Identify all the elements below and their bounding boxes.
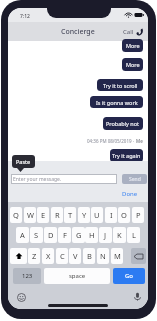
staticText: Go (125, 272, 133, 280)
staticText: Enter your message. (13, 176, 62, 183)
staticText: Is it gonna work (96, 99, 138, 106)
staticText: V (73, 251, 78, 261)
button[interactable]: Go (113, 268, 145, 284)
staticText: space (69, 272, 86, 280)
button[interactable]: C (56, 248, 68, 264)
button[interactable]: A (16, 227, 29, 243)
staticText: A (20, 230, 25, 240)
staticText: R (55, 210, 60, 220)
button[interactable]: 123 (13, 268, 41, 284)
staticText: B (87, 251, 92, 261)
staticText: More (126, 61, 140, 68)
staticText: 7:12 (20, 13, 30, 20)
button[interactable]: Try it to scroll (97, 79, 143, 91)
staticText: Me (136, 138, 143, 144)
button[interactable]: R (51, 207, 63, 223)
button[interactable]: I (105, 207, 117, 223)
staticText: Q (13, 210, 19, 220)
button[interactable]: X (42, 248, 54, 264)
button[interactable]: G (72, 227, 85, 243)
button[interactable]: Backspace (131, 248, 146, 264)
button[interactable]: S (30, 227, 43, 243)
button[interactable]: space (44, 268, 110, 284)
staticText: M (114, 251, 121, 261)
staticText: D (48, 230, 54, 240)
button[interactable]: Dictation (133, 292, 142, 301)
button[interactable]: K (113, 227, 126, 243)
staticText: Done (122, 190, 138, 198)
staticText: E (41, 210, 46, 220)
button[interactable]: Emoji (17, 293, 26, 302)
button[interactable]: U (91, 207, 103, 223)
button[interactable]: Z (28, 248, 40, 264)
button[interactable]: Try it again (110, 149, 143, 162)
button[interactable]: Paste (12, 155, 35, 168)
staticText: H (89, 230, 95, 240)
staticText: N (100, 251, 106, 261)
button[interactable]: More (122, 39, 143, 52)
staticText: G (76, 230, 82, 240)
other: Backspace (134, 253, 143, 260)
button[interactable]: P (132, 207, 144, 223)
staticText: Call (123, 28, 134, 36)
staticText: U (94, 210, 100, 220)
button[interactable]: More (122, 58, 143, 71)
button[interactable]: H (85, 227, 98, 243)
button[interactable]: E (37, 207, 49, 223)
button[interactable]: O (118, 207, 130, 223)
button[interactable]: Shift (10, 248, 27, 264)
button[interactable]: Y (78, 207, 90, 223)
button[interactable]: T (64, 207, 76, 223)
button[interactable]: D (44, 227, 57, 243)
button[interactable]: W (24, 207, 36, 223)
other: Shift (15, 252, 23, 260)
staticText: T (68, 210, 73, 220)
staticText: Probably not (106, 120, 140, 127)
button[interactable]: M (111, 248, 123, 264)
button[interactable]: Done (120, 189, 140, 199)
staticText: Try it to scroll (103, 82, 138, 89)
staticText: More (126, 42, 140, 49)
staticText: W (27, 210, 34, 220)
staticText: I (110, 210, 113, 220)
button[interactable]: L (127, 227, 140, 243)
staticText: L (132, 230, 136, 240)
button[interactable]: Call (123, 28, 144, 36)
staticText: O (121, 210, 127, 220)
staticText: Send (129, 176, 141, 183)
staticText: Concierge (61, 27, 95, 37)
staticText: 04:36 PM 08/05/2019 · (87, 138, 136, 144)
button[interactable]: F (58, 227, 71, 243)
button[interactable]: V (69, 248, 81, 264)
button[interactable]: Send (122, 174, 147, 184)
button[interactable]: N (97, 248, 109, 264)
staticText: Try it again (112, 152, 141, 159)
staticText: Z (32, 251, 37, 261)
button[interactable]: B (83, 248, 95, 264)
staticText: 123 (22, 272, 33, 280)
staticText: P (136, 210, 141, 220)
staticText: X (46, 251, 51, 261)
staticText: J (104, 230, 107, 240)
button[interactable]: Is it gonna work (90, 96, 143, 108)
staticText: S (34, 230, 39, 240)
staticText: F (63, 230, 67, 240)
staticText: Paste (16, 158, 31, 165)
button[interactable]: Enter your message. (11, 174, 117, 184)
button[interactable]: Probably not (103, 117, 143, 130)
staticText: K (117, 230, 122, 240)
staticText: C (60, 251, 65, 261)
button[interactable]: Q (10, 207, 22, 223)
button[interactable]: J (99, 227, 112, 243)
staticText: Y (82, 210, 87, 220)
